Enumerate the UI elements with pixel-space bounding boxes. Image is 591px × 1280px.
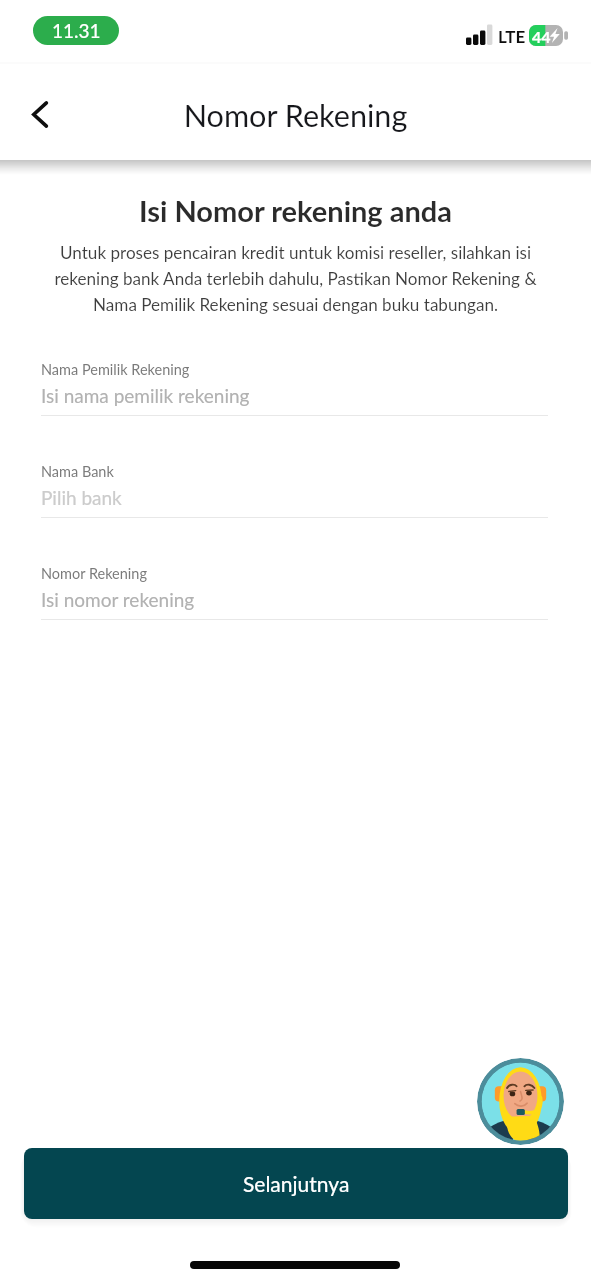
staticText: LTE [498, 26, 526, 46]
staticText: Isi Nomor rekening anda [0, 193, 591, 228]
staticText: Nama Bank [41, 463, 114, 480]
button[interactable]: Nama Pemilik Rekening [41, 361, 548, 416]
staticText: Nomor Rekening [0, 97, 591, 134]
button[interactable]: Selanjutnya [24, 1148, 568, 1219]
button[interactable]: Nomor Rekening [41, 565, 548, 620]
staticText: 44 [532, 27, 551, 46]
staticText: Isi nama pemilik rekening [41, 384, 250, 407]
staticText: 11.31 [52, 19, 101, 42]
staticText: Isi nomor rekening [41, 588, 195, 611]
button[interactable]: Nama Bank [41, 463, 548, 518]
staticText: Nomor Rekening [41, 565, 147, 582]
button[interactable]: Customer service chat [477, 1058, 564, 1145]
staticText: Nama Pemilik Rekening [41, 361, 190, 378]
staticText: Selanjutnya [243, 1171, 350, 1196]
staticText: Untuk proses pencairan kredit untuk komi… [20, 242, 571, 315]
button[interactable]: Back [14, 88, 66, 140]
staticText: Pilih bank [41, 486, 122, 509]
